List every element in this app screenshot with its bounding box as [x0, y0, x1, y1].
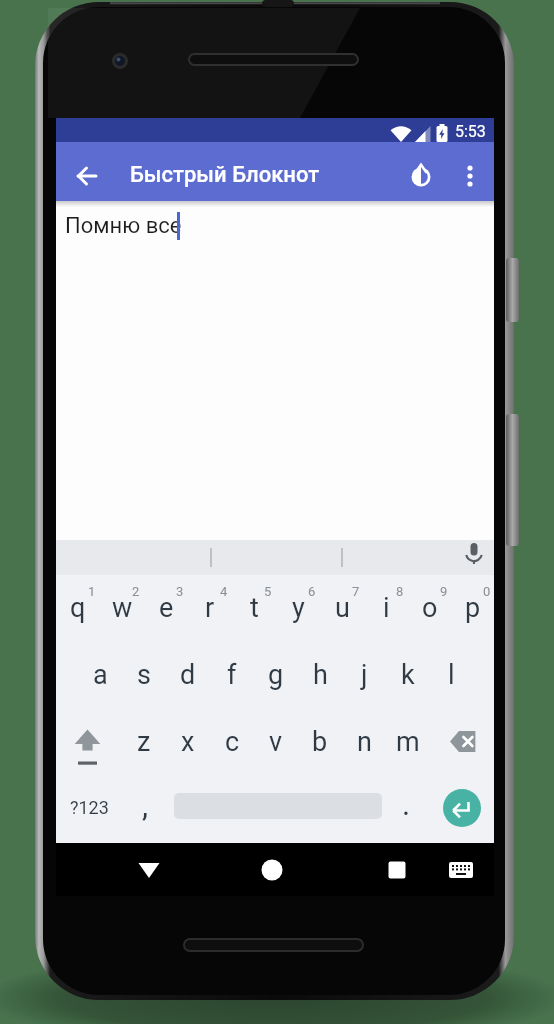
button[interactable]: o	[408, 575, 452, 642]
button[interactable]	[441, 850, 481, 890]
button[interactable]	[373, 846, 421, 894]
button[interactable]: z	[122, 709, 166, 776]
staticText: d	[180, 659, 196, 691]
button[interactable]: t	[232, 575, 276, 642]
staticText: 7	[352, 584, 360, 599]
button[interactable]	[430, 709, 494, 776]
staticText: n	[357, 726, 372, 758]
button[interactable]: m	[386, 709, 430, 776]
staticText: a	[93, 659, 108, 691]
staticText: 5	[264, 584, 272, 599]
staticText: ?123	[70, 797, 109, 818]
button[interactable]: g	[254, 642, 298, 709]
staticText: Быстрый Блокнот	[130, 162, 320, 188]
button[interactable]: f	[210, 642, 254, 709]
staticText: 2	[132, 584, 140, 599]
staticText: 5:53	[455, 122, 486, 141]
button[interactable]: c	[210, 709, 254, 776]
staticText: h	[313, 659, 328, 691]
staticText: 0	[483, 584, 491, 599]
button[interactable]: a	[78, 642, 122, 709]
button[interactable]: Помню все	[56, 201, 494, 540]
staticText: 6	[308, 584, 316, 599]
staticText: 1	[88, 584, 96, 599]
staticText: Помню все	[65, 213, 182, 239]
staticText: y	[292, 592, 305, 624]
button[interactable]: l	[430, 642, 472, 709]
staticText: t	[250, 592, 259, 624]
button[interactable]	[248, 846, 296, 894]
staticText: 4	[220, 584, 228, 599]
button[interactable]: x	[166, 709, 210, 776]
staticText: 9	[440, 584, 448, 599]
staticText: ,	[142, 787, 149, 823]
button[interactable]: .	[382, 776, 436, 843]
staticText: v	[269, 726, 283, 758]
button[interactable]	[174, 776, 382, 843]
staticText: p	[465, 592, 481, 624]
button[interactable]: h	[298, 642, 342, 709]
staticText: m	[396, 726, 420, 758]
button[interactable]: v	[254, 709, 298, 776]
staticText: r	[205, 592, 215, 624]
staticText: j	[361, 659, 368, 691]
button[interactable]	[454, 540, 494, 575]
staticText: k	[401, 659, 415, 691]
button[interactable]: ?123	[56, 776, 122, 843]
button[interactable]	[446, 150, 494, 198]
staticText: g	[268, 659, 284, 691]
staticText: z	[137, 726, 151, 758]
button[interactable]: ,	[122, 776, 174, 843]
button[interactable]: i	[364, 575, 408, 642]
button[interactable]	[443, 789, 481, 827]
button[interactable]: k	[386, 642, 430, 709]
staticText: i	[383, 592, 390, 624]
button[interactable]: u	[320, 575, 364, 642]
button[interactable]	[56, 709, 122, 776]
button[interactable]	[63, 152, 111, 200]
button[interactable]	[397, 151, 445, 199]
staticText: 8	[396, 584, 404, 599]
button[interactable]: q	[56, 575, 100, 642]
button[interactable]: p	[452, 575, 494, 642]
button[interactable]: b	[298, 709, 342, 776]
button[interactable]: e	[144, 575, 188, 642]
staticText: c	[225, 726, 240, 758]
staticText: w	[112, 592, 133, 624]
staticText: s	[137, 659, 151, 691]
button[interactable]: y	[276, 575, 320, 642]
button[interactable]: s	[122, 642, 166, 709]
button[interactable]: d	[166, 642, 210, 709]
button[interactable]: n	[342, 709, 386, 776]
staticText: f	[227, 659, 237, 691]
button[interactable]	[125, 846, 173, 894]
staticText: b	[312, 726, 328, 758]
staticText: q	[70, 592, 86, 624]
staticText: 3	[176, 584, 184, 599]
button[interactable]: r	[188, 575, 232, 642]
staticText: l	[448, 659, 455, 691]
staticText: x	[181, 726, 195, 758]
button[interactable]: j	[342, 642, 386, 709]
staticText: .	[402, 786, 411, 822]
staticText: e	[159, 592, 174, 624]
staticText: o	[422, 592, 438, 624]
button[interactable]: w	[100, 575, 144, 642]
staticText: u	[335, 592, 350, 624]
